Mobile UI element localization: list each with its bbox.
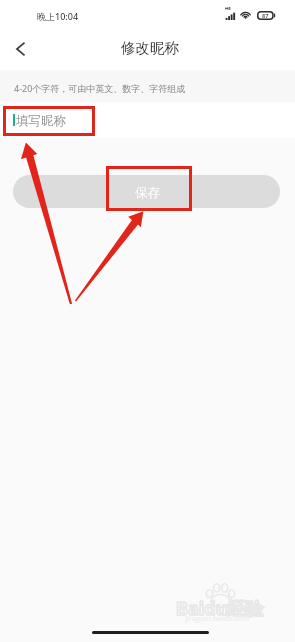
staticText: jingyan.baidu.com xyxy=(185,614,250,624)
staticText: 87 xyxy=(262,12,269,19)
staticText: 4-20个字符，可由中英文、数字、字符组成 xyxy=(14,82,186,94)
button[interactable]: Back xyxy=(4,33,36,65)
button[interactable]: 填写昵称 xyxy=(0,107,295,135)
button[interactable]: 保存 xyxy=(13,175,280,208)
staticText: 保存 xyxy=(135,185,160,201)
staticText: 修改昵称 xyxy=(121,39,179,57)
staticText: 晚上10:04 xyxy=(37,10,79,22)
staticText: 填写昵称 xyxy=(16,113,66,129)
staticText: Baidu经验 xyxy=(176,596,264,621)
